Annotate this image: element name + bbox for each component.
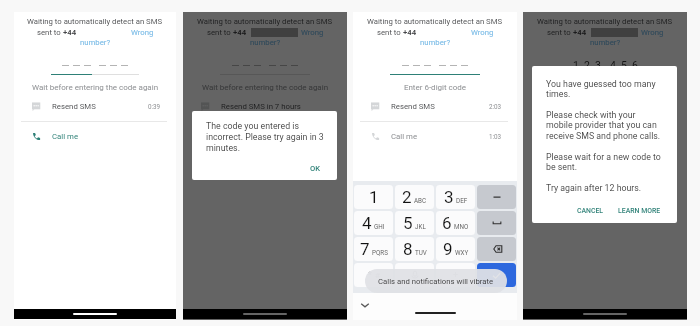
staticText: sent to bbox=[547, 28, 573, 37]
other: Call me bbox=[32, 132, 41, 141]
staticText: Resend SMS bbox=[52, 102, 96, 111]
staticText: OK bbox=[310, 164, 321, 173]
button[interactable]: Wrong bbox=[131, 28, 154, 37]
staticText: The code you entered is incorrect. Pleas… bbox=[206, 121, 324, 153]
button[interactable]: 9 bbox=[436, 237, 475, 261]
button[interactable]: Plus bbox=[436, 263, 475, 287]
staticText: 3 bbox=[595, 59, 601, 69]
staticText: Waiting to automatically detect an SMS bbox=[367, 17, 503, 26]
staticText: ABC bbox=[414, 197, 427, 204]
staticText: + bbox=[453, 270, 459, 281]
button[interactable]: 8 bbox=[395, 237, 434, 261]
staticText: 3 bbox=[444, 187, 454, 207]
staticText: 2 bbox=[584, 59, 590, 69]
button[interactable]: 1 bbox=[354, 185, 393, 209]
other: Resend SMS bbox=[32, 102, 41, 111]
staticText: Resend SMS bbox=[391, 102, 435, 111]
staticText: CANCEL bbox=[577, 207, 604, 215]
staticText: 1 bbox=[369, 187, 379, 207]
other: Resend SMS bbox=[201, 102, 210, 111]
button[interactable]: 4 bbox=[354, 211, 393, 235]
button[interactable]: OK bbox=[307, 162, 324, 175]
button[interactable]: Backspace bbox=[477, 237, 516, 261]
staticText: Enter 6-digit code bbox=[353, 83, 517, 92]
staticText: number? bbox=[420, 38, 451, 47]
other: Call me bbox=[371, 132, 380, 141]
button[interactable]: 3 bbox=[436, 185, 475, 209]
staticText: Try again after 12 hours. bbox=[546, 183, 642, 193]
button[interactable]: LEARN MORE bbox=[615, 205, 664, 217]
button[interactable]: Resend SMS bbox=[183, 96, 347, 116]
staticText: 5 bbox=[403, 213, 413, 233]
button[interactable]: Call me bbox=[14, 126, 176, 146]
button[interactable]: Wrong bbox=[471, 28, 494, 37]
staticText: 2:03 bbox=[489, 103, 502, 110]
other: Resend SMS bbox=[371, 102, 380, 111]
staticText: 7 bbox=[360, 239, 370, 259]
staticText: Waiting to automatically detect an SMS bbox=[537, 17, 673, 26]
other: Space bbox=[489, 215, 505, 231]
staticText: 9 bbox=[443, 239, 453, 259]
staticText: 6 bbox=[442, 213, 452, 233]
staticText: 1 bbox=[573, 59, 579, 69]
button[interactable]: number? bbox=[420, 38, 451, 47]
button[interactable]: Wrong bbox=[301, 28, 324, 37]
button[interactable]: Call me bbox=[353, 126, 517, 146]
button[interactable]: Hide keyboard bbox=[360, 300, 370, 310]
staticText: Wrong bbox=[301, 28, 324, 37]
staticText: Waiting to automatically detect an SMS bbox=[27, 17, 163, 26]
staticText: TUV bbox=[415, 249, 427, 256]
button[interactable]: Dash bbox=[477, 185, 516, 209]
button[interactable]: CANCEL bbox=[574, 205, 607, 217]
staticText: Waiting to automatically detect an SMS bbox=[197, 17, 333, 26]
staticText: 5 bbox=[621, 59, 627, 69]
staticText: Resend SMS in 7 hours bbox=[221, 102, 301, 111]
staticText: +44 bbox=[63, 28, 77, 37]
staticText: 0:39 bbox=[148, 103, 161, 110]
staticText: 4 bbox=[610, 59, 616, 69]
staticText: DEF bbox=[456, 197, 468, 204]
button[interactable]: 6 bbox=[436, 211, 475, 235]
staticText: Call me bbox=[52, 132, 79, 141]
staticText: GHI bbox=[374, 223, 385, 230]
staticText: Wrong bbox=[641, 28, 664, 37]
staticText: Wrong bbox=[131, 28, 154, 37]
staticText: MNO bbox=[454, 223, 469, 230]
button[interactable]: number? bbox=[80, 38, 111, 47]
staticText: Calls and notifications will vibrate bbox=[378, 277, 494, 286]
staticText bbox=[523, 83, 687, 92]
staticText: +44 bbox=[233, 28, 247, 37]
button[interactable]: Resend SMS bbox=[353, 96, 517, 116]
button[interactable]: Wrong bbox=[641, 28, 664, 37]
staticText: Wrong bbox=[471, 28, 494, 37]
staticText: LEARN MORE bbox=[618, 207, 661, 215]
staticText: Please wait for a new code to be sent. bbox=[546, 152, 664, 173]
button[interactable]: 5 bbox=[395, 211, 434, 235]
button[interactable]: number? bbox=[250, 38, 281, 47]
button[interactable]: 2 bbox=[395, 185, 434, 209]
other: Backspace bbox=[489, 241, 505, 257]
staticText: +44 bbox=[403, 28, 417, 37]
staticText: * bbox=[368, 270, 372, 281]
staticText: number? bbox=[590, 38, 621, 47]
staticText: Wait before entering the code again bbox=[183, 83, 347, 92]
other: Dash bbox=[489, 189, 505, 205]
staticText: 2 bbox=[402, 187, 412, 207]
staticText: PQRS bbox=[372, 249, 388, 256]
staticText: sent to bbox=[377, 28, 403, 37]
staticText: +44 bbox=[573, 28, 587, 37]
staticText: Please check with your mobile provider t… bbox=[546, 110, 664, 142]
staticText: Call me bbox=[391, 132, 418, 141]
button[interactable]: Resend SMS bbox=[14, 96, 176, 116]
button[interactable]: Space bbox=[477, 211, 516, 235]
button[interactable]: 7 bbox=[354, 237, 393, 261]
button[interactable]: Symbols bbox=[354, 263, 393, 287]
button[interactable]: Voice input bbox=[395, 263, 434, 287]
staticText: Wait before entering the code again bbox=[14, 83, 176, 92]
staticText: 6 bbox=[632, 59, 638, 69]
staticText: sent to bbox=[37, 28, 63, 37]
staticText: JKL bbox=[415, 223, 426, 230]
button[interactable]: Done bbox=[477, 263, 516, 287]
staticText: number? bbox=[80, 38, 111, 47]
button[interactable]: number? bbox=[590, 38, 621, 47]
